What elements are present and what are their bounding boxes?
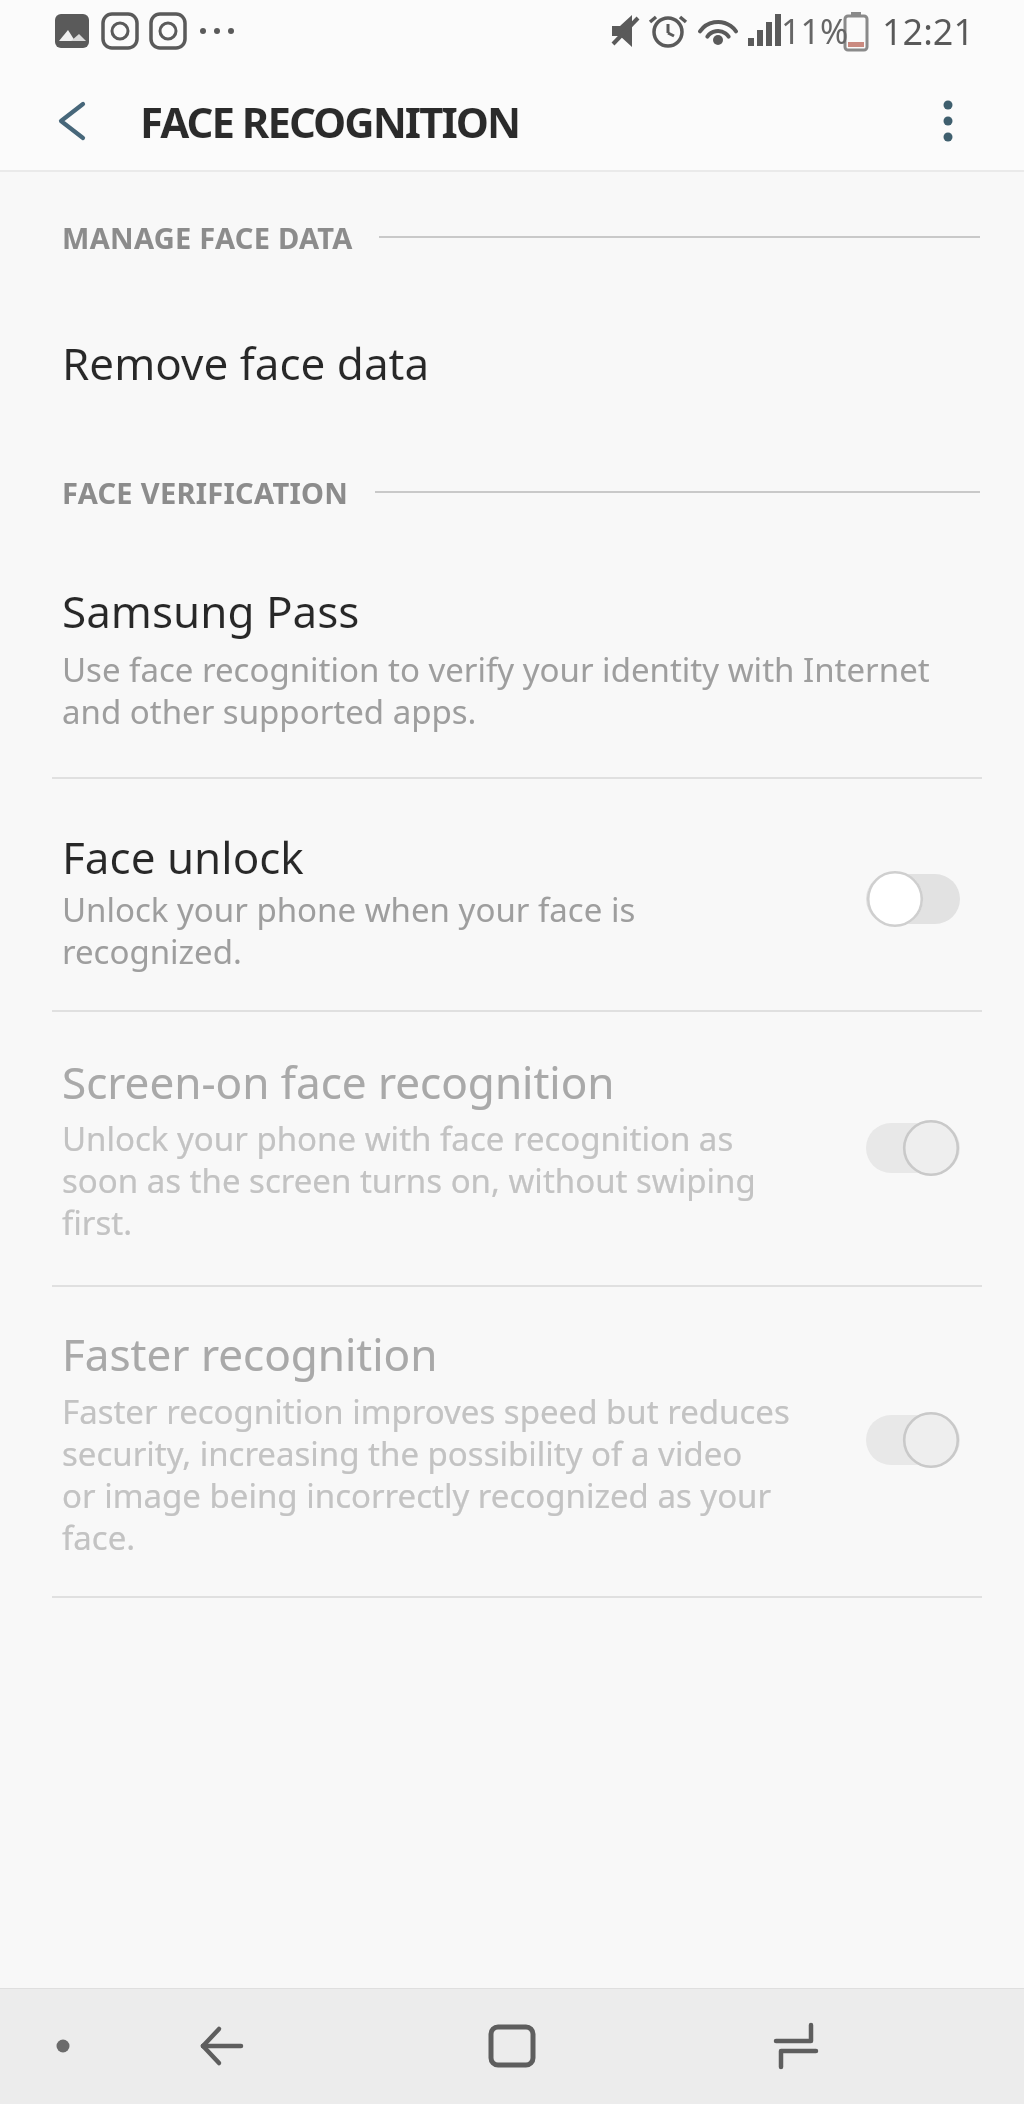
- staticText: 11%: [781, 8, 849, 54]
- button[interactable]: [48, 2031, 78, 2061]
- button[interactable]: [866, 1119, 960, 1177]
- staticText: Unlock your phone when your face is reco…: [62, 887, 636, 974]
- staticText: Samsung Pass: [62, 581, 360, 641]
- button[interactable]: [866, 870, 960, 928]
- staticText: Screen-on face recognition: [62, 1052, 615, 1112]
- staticText: Use face recognition to verify your iden…: [62, 647, 930, 734]
- button[interactable]: [866, 1411, 960, 1469]
- staticText: FACE RECOGNITION: [140, 93, 520, 150]
- staticText: Face unlock: [62, 827, 304, 887]
- staticText: Remove face data: [62, 333, 430, 393]
- button[interactable]: [40, 89, 104, 153]
- button[interactable]: Remove face data: [0, 302, 1024, 424]
- button[interactable]: Samsung Pass: [0, 560, 1024, 777]
- staticText: Faster recognition: [62, 1324, 438, 1384]
- button[interactable]: [470, 2004, 554, 2088]
- staticText: MANAGE FACE DATA: [62, 218, 353, 257]
- button[interactable]: [180, 2004, 264, 2088]
- staticText: Faster recognition improves speed but re…: [62, 1389, 790, 1560]
- staticText: 12:21: [882, 7, 975, 56]
- button[interactable]: Face unlock: [0, 779, 1024, 1010]
- button[interactable]: [916, 89, 980, 153]
- button[interactable]: Screen-on face recognition: [0, 1012, 1024, 1285]
- button[interactable]: Faster recognition: [0, 1287, 1024, 1596]
- staticText: Unlock your phone with face recognition …: [62, 1116, 756, 1245]
- staticText: FACE VERIFICATION: [62, 473, 349, 512]
- button[interactable]: [754, 2004, 838, 2088]
